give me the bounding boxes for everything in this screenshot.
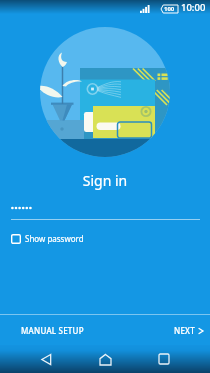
button[interactable]: Back — [32, 345, 60, 373]
button[interactable]: Recents — [150, 345, 178, 373]
button[interactable]: Home — [91, 345, 119, 373]
staticText: NEXT — [174, 325, 195, 336]
button[interactable]: MANUAL SETUP — [0, 319, 105, 342]
staticText: Show password — [25, 233, 84, 244]
button[interactable]: NEXT — [164, 319, 210, 342]
staticText: MANUAL SETUP — [21, 325, 84, 336]
button[interactable]: Show password — [9, 230, 86, 247]
staticText: Sign in — [0, 171, 210, 190]
staticText: 10:00 — [181, 1, 206, 14]
staticText: 100 — [164, 5, 175, 13]
